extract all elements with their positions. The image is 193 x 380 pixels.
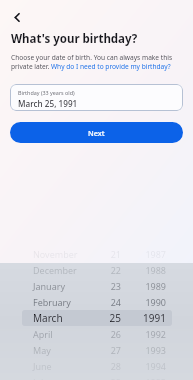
staticText: 1989 (130, 280, 166, 292)
staticText: March (33, 311, 95, 325)
button[interactable]: May (0, 342, 193, 358)
staticText: November (33, 248, 95, 260)
button[interactable]: Next (10, 122, 183, 143)
staticText: 27 (95, 344, 121, 356)
staticText: 1991 (130, 311, 166, 325)
staticText: 1993 (130, 344, 166, 356)
staticText: 23 (95, 280, 121, 292)
staticText: 28 (95, 360, 121, 372)
button[interactable]: January (0, 278, 193, 294)
staticText: April (33, 328, 95, 340)
button[interactable]: December (0, 262, 193, 278)
staticText: December (33, 264, 95, 276)
staticText: 1994 (130, 360, 166, 372)
button[interactable]: Back (4, 4, 30, 30)
button[interactable]: Birthday (33 years old) (10, 84, 183, 111)
staticText: Birthday (33 years old) (18, 89, 75, 96)
button[interactable]: November (0, 246, 193, 262)
staticText: Next (88, 128, 105, 138)
staticText: 1992 (130, 328, 166, 340)
staticText: 26 (95, 328, 121, 340)
staticText: Choose your date of birth. You can alway… (11, 53, 185, 71)
staticText: May (33, 344, 95, 356)
staticText: 1988 (130, 264, 166, 276)
staticText: June (33, 360, 95, 372)
button[interactable]: February (0, 294, 193, 310)
staticText: 1987 (130, 248, 166, 260)
staticText: 25 (95, 311, 121, 325)
button[interactable]: March (0, 310, 193, 326)
staticText: 24 (95, 296, 121, 308)
staticText: March 25, 1991 (18, 98, 78, 109)
staticText: 22 (95, 264, 121, 276)
staticText: What's your birthday? (11, 31, 138, 47)
button[interactable]: April (0, 326, 193, 342)
staticText: February (33, 296, 95, 308)
staticText: January (33, 280, 95, 292)
staticText: 1990 (130, 296, 166, 308)
